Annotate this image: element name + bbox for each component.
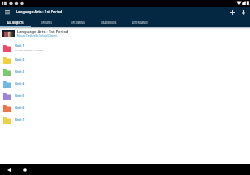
button[interactable]: Unit 1 [0, 42, 250, 54]
staticText: Language Arts : 1st Period [17, 29, 69, 34]
button[interactable]: Unit 2 [0, 54, 250, 66]
staticText: 4/14/20 10:45am - 11:00am [15, 49, 44, 52]
staticText: Unit 2 [15, 58, 25, 62]
button[interactable]: UPDATES [31, 17, 62, 27]
staticText: Unit 7 [15, 118, 25, 122]
button[interactable]: Home [18, 164, 32, 175]
button[interactable]: UPCOMING [62, 17, 93, 27]
button[interactable]: Unit 5 [0, 90, 250, 102]
button[interactable]: ATTENDANCE [124, 17, 155, 27]
staticText: Unit 4 [15, 82, 25, 86]
button[interactable]: Unit 6 [0, 102, 250, 114]
button[interactable]: ALL SUBJECTS [0, 17, 31, 27]
staticText: ALL SUBJECTS [7, 21, 24, 24]
staticText: ATTENDANCE [132, 21, 148, 24]
staticText: Unit 3 [15, 70, 25, 74]
button[interactable]: Add [227, 7, 238, 17]
button[interactable]: Unit 3 [0, 66, 250, 78]
button[interactable]: Unit 7 [0, 114, 250, 126]
staticText: Mount Castleville School District [17, 34, 58, 38]
staticText: UPCOMING [71, 21, 85, 24]
staticText: Unit 5 [15, 94, 25, 98]
staticText: Language Arts : 1st Period [16, 9, 63, 14]
button[interactable]: Unit 4 [0, 78, 250, 90]
button[interactable]: Download [238, 7, 249, 17]
button[interactable]: GRADEBOOK [93, 17, 124, 27]
button[interactable]: Back [2, 164, 16, 175]
staticText: Unit 1 [15, 44, 25, 48]
staticText: Unit 6 [15, 106, 25, 110]
button[interactable]: Language Arts : 1st Period [0, 27, 250, 42]
button[interactable]: Open navigation menu [0, 7, 14, 17]
staticText: UPDATES [41, 21, 52, 24]
staticText: GRADEBOOK [101, 21, 117, 24]
